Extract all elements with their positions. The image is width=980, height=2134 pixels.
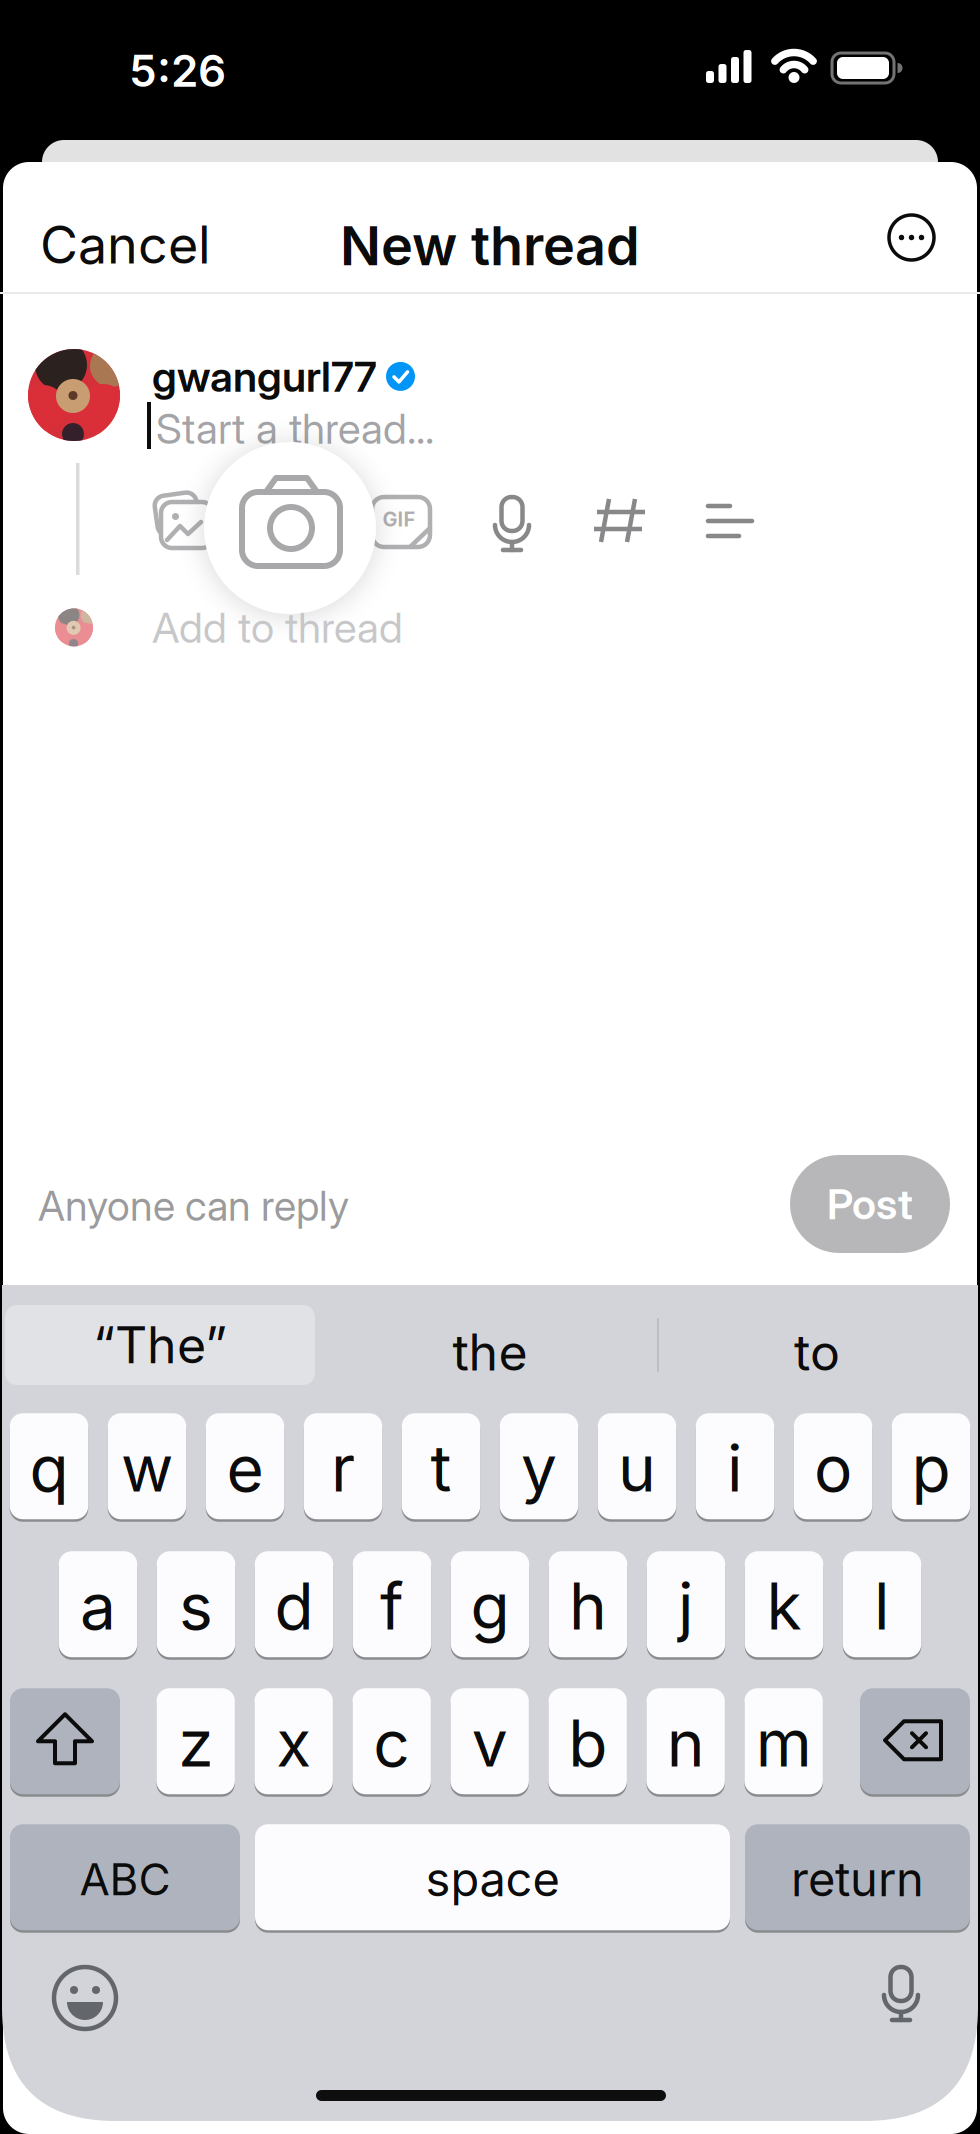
staticText: y — [521, 1429, 557, 1507]
button[interactable]: m — [744, 1687, 823, 1795]
button[interactable]: Dictation — [879, 1965, 923, 2025]
staticText: u — [618, 1429, 656, 1507]
staticText: to — [794, 1322, 840, 1382]
button[interactable]: Delete — [860, 1687, 970, 1795]
button[interactable]: f — [353, 1550, 431, 1658]
staticText: c — [373, 1704, 410, 1782]
button[interactable]: Add to thread — [55, 602, 403, 653]
button[interactable]: g — [451, 1550, 529, 1658]
staticText: x — [276, 1704, 311, 1782]
button[interactable]: w — [108, 1412, 186, 1520]
staticText: “The” — [93, 1315, 227, 1375]
button[interactable]: space — [255, 1823, 730, 1931]
staticText: g — [470, 1567, 509, 1645]
staticText: Post — [827, 1179, 913, 1229]
staticText: d — [274, 1567, 313, 1645]
button[interactable]: the — [327, 1322, 653, 1382]
staticText: s — [179, 1567, 213, 1645]
staticText: v — [472, 1704, 508, 1782]
button[interactable]: i — [696, 1412, 774, 1520]
button[interactable]: Add a GIF — [370, 495, 432, 551]
staticText: k — [766, 1567, 801, 1645]
staticText: q — [29, 1429, 68, 1507]
staticText: b — [568, 1704, 607, 1782]
staticText: return — [791, 1851, 924, 1908]
button[interactable]: k — [745, 1550, 823, 1658]
button[interactable]: ABC — [10, 1823, 240, 1931]
button[interactable]: n — [646, 1687, 725, 1795]
staticText: Anyone can reply — [38, 1181, 349, 1231]
button[interactable]: h — [549, 1550, 627, 1658]
button[interactable]: d — [255, 1550, 333, 1658]
button[interactable]: l — [843, 1550, 921, 1658]
staticText: space — [425, 1851, 559, 1908]
button[interactable]: Add a poll — [704, 500, 756, 542]
button[interactable]: u — [598, 1412, 676, 1520]
button[interactable]: z — [156, 1687, 235, 1795]
button[interactable]: r — [304, 1412, 382, 1520]
button[interactable]: s — [157, 1550, 235, 1658]
staticText: a — [80, 1567, 116, 1645]
staticText: GIF — [382, 507, 415, 531]
staticText: i — [727, 1429, 743, 1507]
staticText: 5:26 — [129, 44, 226, 97]
button[interactable]: More options — [889, 215, 934, 260]
staticText: h — [569, 1567, 607, 1645]
button[interactable]: Post — [790, 1155, 950, 1253]
button[interactable]: y — [500, 1412, 578, 1520]
staticText: w — [121, 1429, 173, 1507]
button[interactable]: Record voice — [490, 495, 534, 555]
button[interactable]: “The” — [5, 1305, 315, 1385]
button[interactable]: j — [647, 1550, 725, 1658]
button[interactable]: Add photos — [153, 490, 215, 552]
staticText: Cancel — [40, 213, 211, 276]
button[interactable]: Anyone can reply — [38, 1181, 349, 1231]
button[interactable]: Shift — [10, 1687, 120, 1795]
button[interactable]: t — [402, 1412, 480, 1520]
staticText: n — [667, 1704, 705, 1782]
button[interactable]: p — [892, 1412, 970, 1520]
button[interactable]: v — [450, 1687, 529, 1795]
button[interactable]: Take photo — [204, 442, 376, 614]
staticText: p — [911, 1429, 950, 1507]
button[interactable]: return — [745, 1823, 970, 1931]
staticText: Add to thread — [152, 602, 403, 653]
button[interactable]: e — [206, 1412, 284, 1520]
staticText: e — [226, 1429, 263, 1507]
staticText: gwangurl77 — [152, 351, 377, 402]
button[interactable]: o — [794, 1412, 872, 1520]
staticText: l — [874, 1567, 890, 1645]
staticText: Start a thread... — [156, 403, 434, 454]
button[interactable]: a — [59, 1550, 137, 1658]
staticText: j — [678, 1567, 694, 1645]
staticText: m — [756, 1704, 812, 1782]
button[interactable]: b — [548, 1687, 627, 1795]
staticText: New thread — [340, 213, 640, 278]
button[interactable]: q — [10, 1412, 88, 1520]
staticText: z — [178, 1704, 213, 1782]
staticText: f — [380, 1567, 404, 1645]
button[interactable]: c — [352, 1687, 431, 1795]
button[interactable]: Add a topic — [592, 497, 648, 545]
staticText: o — [814, 1429, 852, 1507]
staticText: the — [452, 1322, 527, 1382]
staticText: ABC — [79, 1853, 170, 1906]
button[interactable]: Emoji — [54, 1967, 116, 2029]
button[interactable]: x — [254, 1687, 333, 1795]
button[interactable]: Cancel — [40, 213, 211, 276]
button[interactable]: to — [654, 1322, 980, 1382]
staticText: t — [430, 1429, 451, 1507]
staticText: r — [331, 1429, 355, 1507]
